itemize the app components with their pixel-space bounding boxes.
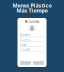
staticText: Más Tiempo <box>16 7 47 14</box>
button[interactable] <box>33 61 44 65</box>
staticText: Menos Plástico <box>12 2 51 9</box>
staticText: Correo <box>20 38 30 42</box>
button[interactable] <box>20 61 31 65</box>
staticText: Ciudad <box>20 48 30 51</box>
staticText: Clave <box>20 43 27 47</box>
staticText: Nombre <box>20 33 31 37</box>
staticText: Mi Cuenta <box>24 20 39 23</box>
